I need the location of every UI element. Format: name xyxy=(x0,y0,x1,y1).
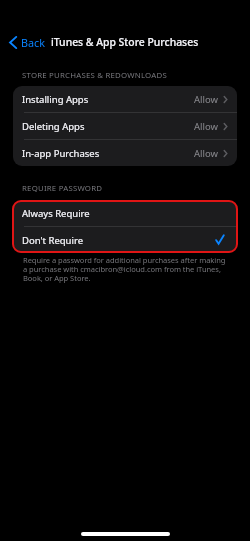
staticText: Require a password for additional purcha… xyxy=(23,255,243,284)
button[interactable]: Don't Require xyxy=(13,227,237,253)
staticText: Always Require xyxy=(22,207,90,220)
button[interactable]: Back xyxy=(5,33,48,51)
staticText: Don't Require xyxy=(22,234,84,247)
staticText: Deleting Apps xyxy=(22,120,85,133)
staticText: Back xyxy=(21,35,46,50)
staticText: In-app Purchases xyxy=(22,147,100,160)
staticText: STORE PURCHASES & REDOWNLOADS xyxy=(22,70,167,81)
staticText: Allow xyxy=(194,93,218,106)
staticText: iTunes & App Store Purchases xyxy=(51,35,199,49)
staticText: Allow xyxy=(194,147,218,160)
staticText: REQUIRE PASSWORD xyxy=(22,183,103,194)
button[interactable]: Installing Apps xyxy=(13,86,237,112)
other: Selected xyxy=(215,234,225,245)
button[interactable]: In-app Purchases xyxy=(13,140,237,166)
button[interactable]: Deleting Apps xyxy=(13,113,237,139)
button[interactable]: Always Require xyxy=(13,201,237,226)
staticText: Installing Apps xyxy=(22,93,89,106)
staticText: Allow xyxy=(194,120,218,133)
